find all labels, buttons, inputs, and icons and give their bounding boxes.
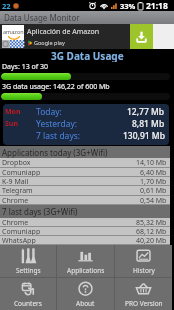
staticText: Chrome xyxy=(2,218,29,226)
staticText: History xyxy=(133,266,155,275)
button[interactable]: amazon xyxy=(0,24,174,49)
button[interactable]: Counters xyxy=(0,278,56,310)
staticText: Chrome xyxy=(2,196,29,204)
staticText: 68,12 Mb xyxy=(136,227,167,235)
button[interactable]: Comuniapp xyxy=(0,227,170,235)
staticText: 7 last days (3G+Wifi) xyxy=(2,206,78,217)
button[interactable]: Telegram xyxy=(0,186,170,195)
button[interactable]: Mon xyxy=(3,106,169,118)
staticText: About xyxy=(76,299,95,308)
staticText: Aplicación de Amazon xyxy=(27,27,100,37)
button[interactable]: Chrome xyxy=(0,196,170,204)
button[interactable]: WhatsApp xyxy=(0,236,170,244)
staticText: Telegram xyxy=(2,186,33,195)
staticText: 12,77 Mb xyxy=(127,106,165,118)
staticText: 85,32 Mb xyxy=(136,218,167,226)
staticText: Settings xyxy=(16,266,41,275)
staticText: 21:18 xyxy=(146,0,168,11)
staticText: 8,81 Mb xyxy=(132,118,165,130)
staticText: 14,10 Mb xyxy=(136,158,167,167)
staticText: Mon xyxy=(5,107,21,117)
button[interactable]: Comuniapp xyxy=(0,168,170,176)
button[interactable]: 7 last days: xyxy=(3,130,169,142)
staticText: Yesterday: xyxy=(36,118,78,130)
staticText: Dropbox xyxy=(2,158,31,167)
staticText: WhatsApp xyxy=(2,236,36,244)
staticText: PRO Version xyxy=(125,299,163,308)
staticText: Counters xyxy=(14,299,42,308)
staticText: amazon xyxy=(3,28,24,35)
staticText: Applications today (3G+Wifi) xyxy=(2,147,108,158)
staticText: 33% xyxy=(120,1,136,11)
staticText: 0,61 Mb xyxy=(140,186,167,195)
button[interactable]: K-9 Mail xyxy=(0,177,170,185)
button[interactable]: About xyxy=(57,278,114,310)
staticText: 7 last days: xyxy=(36,130,81,142)
button[interactable]: History xyxy=(115,245,172,277)
button[interactable]: Chrome xyxy=(0,218,170,226)
staticText: Days: 13 of 30 xyxy=(2,62,48,72)
staticText: Sun xyxy=(5,119,18,129)
staticText: K-9 Mail xyxy=(2,177,29,185)
staticText: Today: xyxy=(36,106,62,118)
staticText: Applications xyxy=(67,266,105,275)
staticText: 22 xyxy=(2,1,11,11)
staticText: Comuniapp xyxy=(2,227,41,235)
button[interactable]: PRO Version xyxy=(115,278,172,310)
button[interactable]: Sun xyxy=(3,118,169,130)
staticText: 6,40 Mb xyxy=(140,168,167,176)
staticText: 40,20 Mb xyxy=(136,236,167,244)
button[interactable]: Dropbox xyxy=(0,158,170,167)
staticText: 0,54 Mb xyxy=(140,196,167,204)
staticText: Comuniapp xyxy=(2,168,41,176)
staticText: 1,70 Mb xyxy=(140,177,167,185)
staticText: 3G data usage: 146,22 of 600 Mb xyxy=(2,82,110,92)
staticText: Google play xyxy=(34,39,65,46)
staticText: Data Usage Monitor xyxy=(4,12,80,23)
button[interactable]: Settings xyxy=(0,245,56,277)
button[interactable]: Install xyxy=(130,24,153,49)
staticText: 3G Data Usage xyxy=(51,49,124,62)
button[interactable]: Applications xyxy=(57,245,114,277)
staticText: 130,91 Mb xyxy=(123,130,165,142)
